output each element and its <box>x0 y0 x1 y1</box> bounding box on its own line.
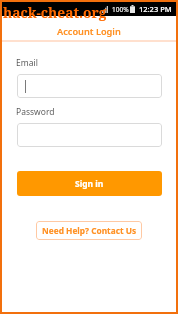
button[interactable]: Password input field <box>17 123 162 147</box>
staticText: Account Login <box>57 25 121 38</box>
staticText: Email <box>16 57 38 69</box>
button[interactable]: Sign in <box>17 171 162 196</box>
button[interactable]: Need Help? Contact Us <box>36 221 142 240</box>
staticText: 100% <box>112 5 129 14</box>
staticText: hack-cheat.org <box>3 3 107 22</box>
button[interactable]: Email input field <box>17 74 162 98</box>
staticText: Sign in <box>75 178 104 190</box>
staticText: 12:23 PM <box>139 4 172 14</box>
staticText: Need Help? Contact Us <box>42 225 137 236</box>
staticText: Password <box>16 106 55 118</box>
